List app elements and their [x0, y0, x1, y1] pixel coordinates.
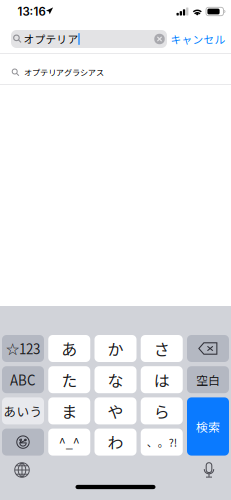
button[interactable]: Switch keyboard: [5, 455, 39, 485]
staticText: や: [107, 399, 123, 422]
staticText: キャンセル: [170, 31, 225, 47]
staticText: ま: [61, 399, 77, 422]
staticText: は: [154, 368, 170, 391]
staticText: あいう: [3, 402, 42, 420]
staticText: オプテリア: [23, 31, 78, 46]
button[interactable]: Delete: [187, 335, 229, 362]
button[interactable]: Dictation: [192, 455, 226, 485]
staticText: ☆123: [6, 339, 40, 358]
staticText: わ: [107, 430, 123, 454]
staticText: あ: [61, 337, 77, 360]
staticText: 13:16: [17, 5, 45, 18]
staticText: か: [107, 337, 123, 360]
button[interactable]: 、。?!: [141, 429, 183, 456]
button[interactable]: ま: [48, 397, 90, 424]
button[interactable]: わ: [94, 429, 136, 456]
button[interactable]: Clear text: [149, 30, 169, 48]
staticText: 、。?!: [147, 434, 177, 450]
button[interactable]: あ: [48, 335, 90, 362]
button[interactable]: は: [141, 366, 183, 393]
button[interactable]: か: [94, 335, 136, 362]
staticText: な: [107, 368, 123, 391]
button[interactable]: た: [48, 366, 90, 393]
staticText: ら: [154, 399, 170, 422]
button[interactable]: ☆123: [2, 335, 44, 362]
staticText: ABC: [10, 370, 36, 389]
button[interactable]: な: [94, 366, 136, 393]
staticText: オプテリアグラシアス: [24, 66, 104, 78]
button[interactable]: ^_^: [48, 429, 90, 456]
button[interactable]: や: [94, 397, 136, 424]
button[interactable]: キャンセル: [169, 29, 227, 49]
staticText: ^_^: [59, 433, 80, 451]
button[interactable]: あいう: [2, 397, 44, 424]
button[interactable]: ABC: [2, 366, 44, 393]
button[interactable]: 空白: [187, 366, 229, 393]
staticText: さ: [154, 337, 170, 360]
button[interactable]: 検索: [187, 397, 229, 456]
button[interactable]: ら: [141, 397, 183, 424]
button[interactable]: オプテリアグラシアス: [0, 53, 231, 84]
button[interactable]: さ: [141, 335, 183, 362]
staticText: 空白: [196, 371, 220, 388]
staticText: た: [61, 368, 77, 391]
button[interactable]: Emoji: [2, 429, 44, 456]
staticText: 検索: [196, 418, 220, 435]
